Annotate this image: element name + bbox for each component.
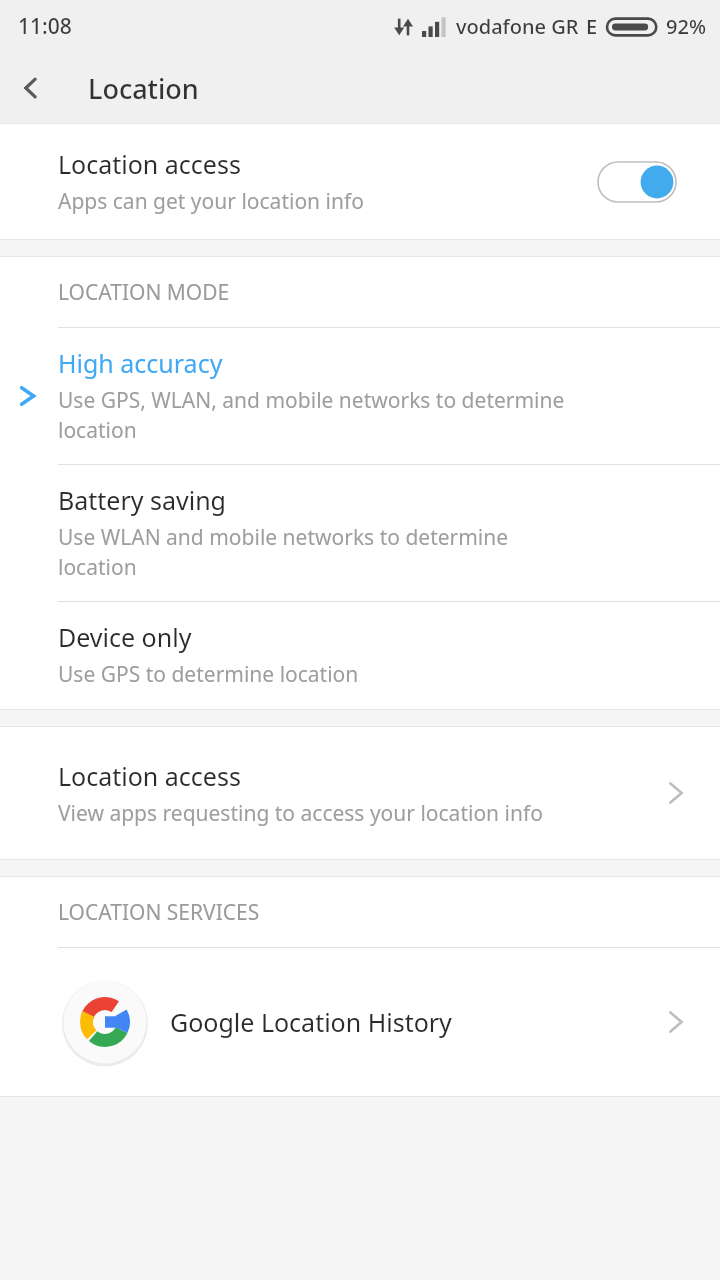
staticText: Use GPS to determine location [58,660,359,689]
staticText: Use WLAN and mobile networks to determin… [58,523,509,581]
button[interactable]: Location access [0,727,720,859]
staticText: 92% [666,13,706,40]
staticText: Apps can get your location info [58,187,364,216]
button[interactable]: Location access [0,124,720,239]
button[interactable]: High accuracy [0,328,720,464]
staticText: Device only [58,620,192,654]
staticText: Google Location History [170,1005,666,1039]
staticText: Location [88,70,199,107]
staticText: Location access [58,759,241,793]
staticText: E [586,13,598,40]
button[interactable] [598,162,676,202]
staticText: High accuracy [58,346,223,380]
staticText: Location access [58,147,241,181]
staticText: 11:08 [18,12,72,41]
button[interactable]: Battery saving [0,465,720,601]
staticText: LOCATION SERVICES [58,898,260,927]
staticText: Battery saving [58,483,226,517]
staticText: vodafone GR [456,13,579,40]
staticText: LOCATION MODE [58,278,230,307]
button[interactable]: Device only [0,602,720,709]
staticText: Use GPS, WLAN, and mobile networks to de… [58,386,565,444]
button[interactable]: Google Location History [0,948,720,1096]
staticText: View apps requesting to access your loca… [58,799,543,828]
button[interactable]: Back [0,57,62,119]
